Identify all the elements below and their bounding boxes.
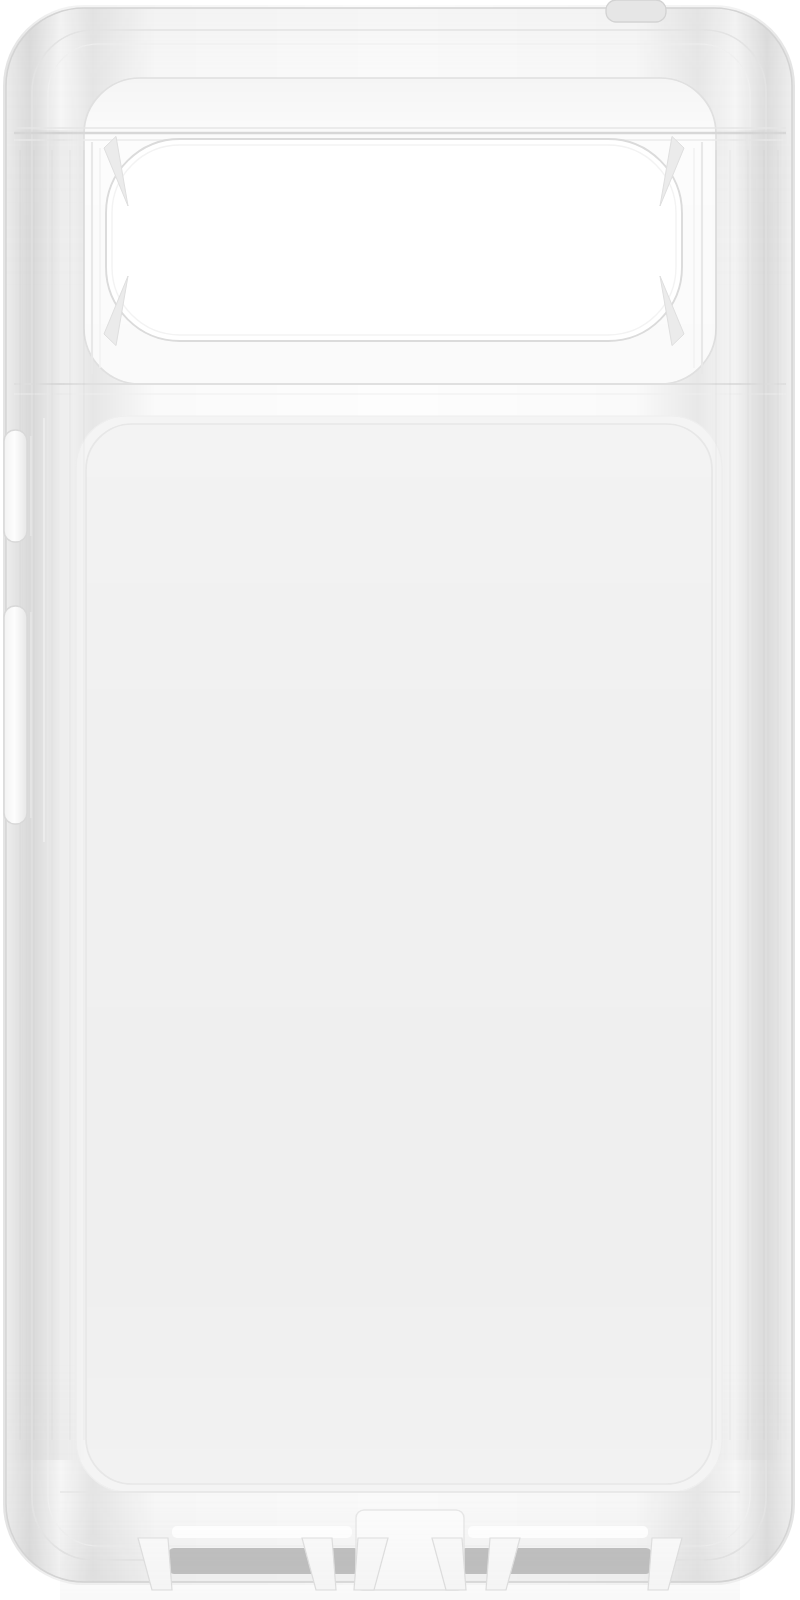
button[interactable]: Clear protective phone case, back view [0, 0, 800, 1600]
